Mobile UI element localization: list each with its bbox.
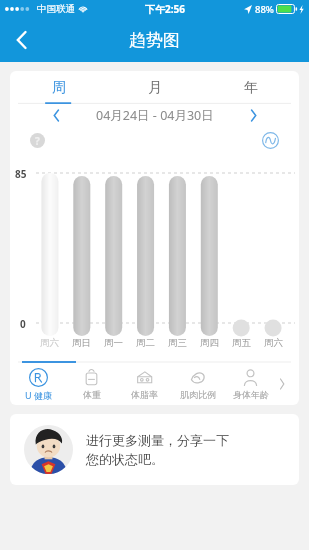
staticText: 周四	[200, 337, 219, 349]
staticText: 趋势图	[129, 30, 180, 51]
button[interactable]: 进行更多测量，分享一下	[10, 414, 299, 485]
staticText: 体脂率	[131, 389, 158, 400]
button[interactable]: Help	[30, 133, 45, 148]
staticText: 85	[15, 167, 27, 181]
staticText: 0	[20, 317, 26, 331]
button[interactable]: 月	[107, 71, 203, 104]
staticText: 周	[52, 79, 66, 97]
staticText: 04月24日 - 04月30日	[96, 107, 214, 124]
button[interactable]: Previous week	[48, 107, 64, 123]
button[interactable]: 肌肉比例	[171, 363, 224, 405]
staticText: 下午2:56	[145, 2, 185, 16]
staticText: 周六	[264, 337, 283, 349]
button[interactable]: 年	[203, 71, 299, 104]
staticText: ?	[35, 134, 40, 148]
button[interactable]: 体重	[65, 363, 118, 405]
button[interactable]: Back	[0, 18, 44, 62]
button[interactable]: 身体年龄	[224, 363, 277, 405]
staticText: 月	[148, 79, 162, 97]
staticText: 您的状态吧。	[86, 451, 164, 467]
staticText: 身体年龄	[233, 389, 269, 400]
staticText: 周三	[168, 337, 187, 349]
button[interactable]: U 健康	[12, 363, 65, 405]
staticText: 年	[244, 79, 258, 97]
staticText: 体重	[83, 389, 101, 400]
button[interactable]: Trend wave	[262, 132, 279, 149]
button[interactable]: 周	[10, 71, 107, 104]
staticText: 进行更多测量，分享一下	[86, 432, 229, 448]
staticText: 周五	[232, 337, 251, 349]
staticText: 周六	[40, 337, 59, 349]
staticText: 中国联通	[37, 3, 75, 15]
button[interactable]: Next week	[245, 107, 261, 123]
staticText: 周日	[72, 337, 91, 349]
staticText: 周二	[136, 337, 155, 349]
button[interactable]: More metrics	[277, 363, 287, 405]
button[interactable]: 体脂率	[118, 363, 171, 405]
staticText: U 健康	[25, 389, 52, 401]
staticText: 肌肉比例	[180, 389, 216, 400]
staticText: 周一	[104, 337, 123, 349]
staticText: 88%	[255, 3, 274, 16]
